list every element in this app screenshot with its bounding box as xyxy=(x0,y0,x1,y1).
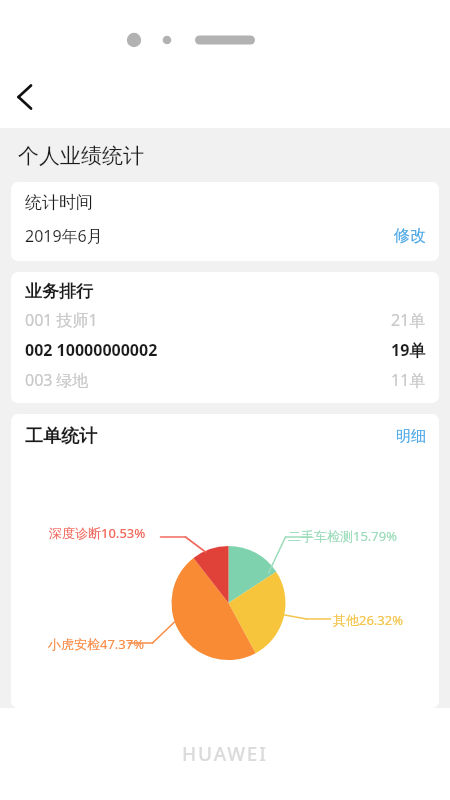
button[interactable]: 001 技师1 xyxy=(25,305,426,335)
staticText: 2019年6月 xyxy=(25,225,103,247)
staticText: HUAWEI xyxy=(182,741,268,767)
staticText: 明细 xyxy=(396,427,426,446)
staticText: 其他26.32% xyxy=(333,611,404,629)
button[interactable]: 统计时间 xyxy=(11,182,439,261)
button[interactable]: 明细 xyxy=(396,427,426,446)
staticText: 二手车检测15.79% xyxy=(288,527,398,545)
staticText: 003 绿地 xyxy=(25,369,89,391)
staticText: 统计时间 xyxy=(25,192,93,213)
button[interactable]: 修改 xyxy=(394,226,426,246)
staticText: 深度诊断10.53% xyxy=(49,524,146,542)
staticText: 修改 xyxy=(394,226,426,246)
staticText: 业务排行 xyxy=(25,281,93,302)
staticText: 工单统计 xyxy=(25,425,97,448)
button[interactable]: Back xyxy=(2,75,46,119)
staticText: 19单 xyxy=(391,339,426,361)
staticText: 个人业绩统计 xyxy=(18,143,144,169)
staticText: 001 技师1 xyxy=(25,309,98,331)
staticText: 小虎安检47.37% xyxy=(48,635,145,653)
staticText: 21单 xyxy=(391,309,426,331)
button[interactable]: 003 绿地 xyxy=(25,365,426,395)
staticText: 002 10000000002 xyxy=(25,339,158,361)
button[interactable]: 002 10000000002 xyxy=(25,335,426,365)
staticText: 11单 xyxy=(391,369,426,391)
